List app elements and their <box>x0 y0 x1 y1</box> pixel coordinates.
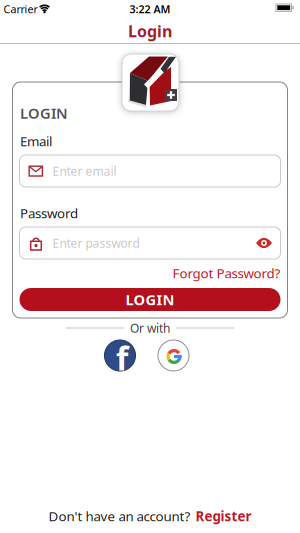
button[interactable]: Enter email <box>19 155 280 187</box>
staticText: Enter password <box>52 235 139 251</box>
staticText: Register <box>195 507 251 525</box>
staticText: Email <box>20 132 52 150</box>
staticText: LOGIN <box>20 103 68 123</box>
staticText: Carrier <box>3 2 37 16</box>
button[interactable]: Show password <box>255 237 272 249</box>
staticText: Enter email <box>52 163 116 179</box>
staticText: Password <box>20 204 78 222</box>
staticText: Don't have an account? <box>48 507 190 525</box>
staticText: LOGIN <box>125 290 174 309</box>
staticText: Forgot Password? <box>172 264 280 282</box>
staticText: f <box>116 337 128 379</box>
button[interactable]: Sign in with Google <box>158 340 189 371</box>
button[interactable]: LOGIN <box>19 288 280 311</box>
button[interactable]: Forgot Password? <box>172 264 280 282</box>
button[interactable]: Sign in with Facebook <box>104 340 135 371</box>
button[interactable]: Enter password <box>19 227 280 259</box>
staticText: Login <box>128 20 172 42</box>
button[interactable]: Register <box>195 507 251 525</box>
staticText: 3:22 AM <box>129 2 170 16</box>
staticText: Or with <box>130 320 170 336</box>
